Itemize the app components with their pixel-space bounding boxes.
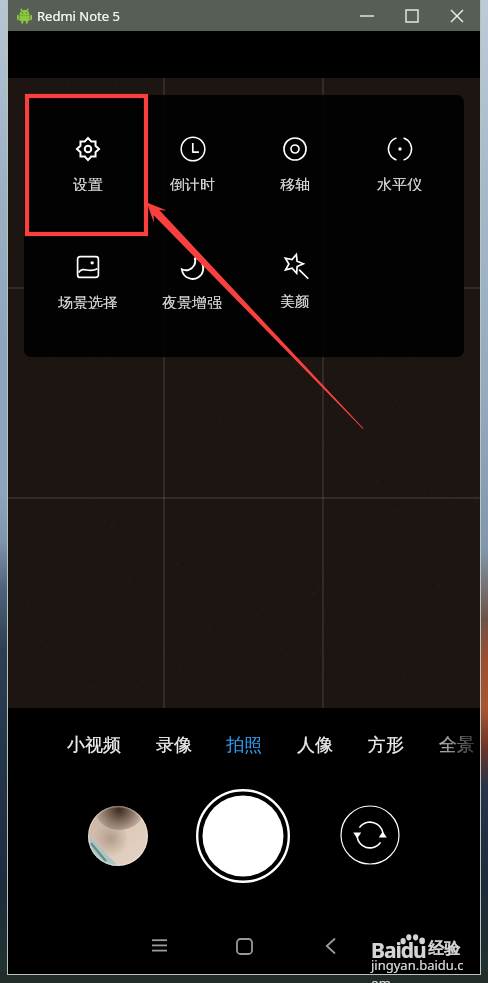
staticText: 移轴 [280,176,310,191]
staticText: 拍照 [226,734,262,757]
button[interactable]: 全景 [431,729,483,761]
button[interactable]: Shutter [196,789,290,883]
staticText: 全景 [439,734,475,757]
staticText: Redmi Note 5 [37,7,120,25]
button[interactable]: Close [434,0,479,31]
staticText: Baidu [371,936,426,965]
button[interactable]: 场景选择 [36,237,140,309]
button[interactable]: 录像 [148,729,200,761]
staticText: 人像 [297,734,333,757]
button[interactable]: Home [222,924,266,968]
staticText: 水平仪 [377,176,422,191]
button[interactable]: 设置 [36,119,140,191]
button[interactable]: 人像 [289,729,341,761]
button[interactable]: 方形 [360,729,412,761]
button[interactable]: Minimize [344,0,389,31]
staticText: 方形 [368,734,404,757]
button[interactable]: Gallery [88,806,148,866]
staticText: 设置 [73,176,103,191]
button[interactable]: 移轴 [243,119,347,191]
button[interactable]: Maximize [389,0,434,31]
button[interactable]: 美颜 [243,236,347,308]
button[interactable]: 倒计时 [140,119,244,191]
button[interactable]: 夜景增强 [140,237,244,309]
staticText: 经验 [428,939,460,959]
button[interactable]: 拍照 [218,729,270,761]
button[interactable]: Back [309,924,353,968]
staticText: 夜景增强 [162,294,222,309]
staticText: 场景选择 [58,294,118,309]
button[interactable]: Menu [137,924,181,968]
staticText: 倒计时 [170,176,215,191]
staticText: 小视频 [67,734,121,757]
staticText: 录像 [156,734,192,757]
staticText: jingyan.baidu.com [371,956,466,983]
button[interactable]: Switch camera [340,805,400,865]
button[interactable]: 水平仪 [347,119,451,191]
button[interactable]: 小视频 [59,729,129,761]
staticText: 美颜 [280,293,310,308]
